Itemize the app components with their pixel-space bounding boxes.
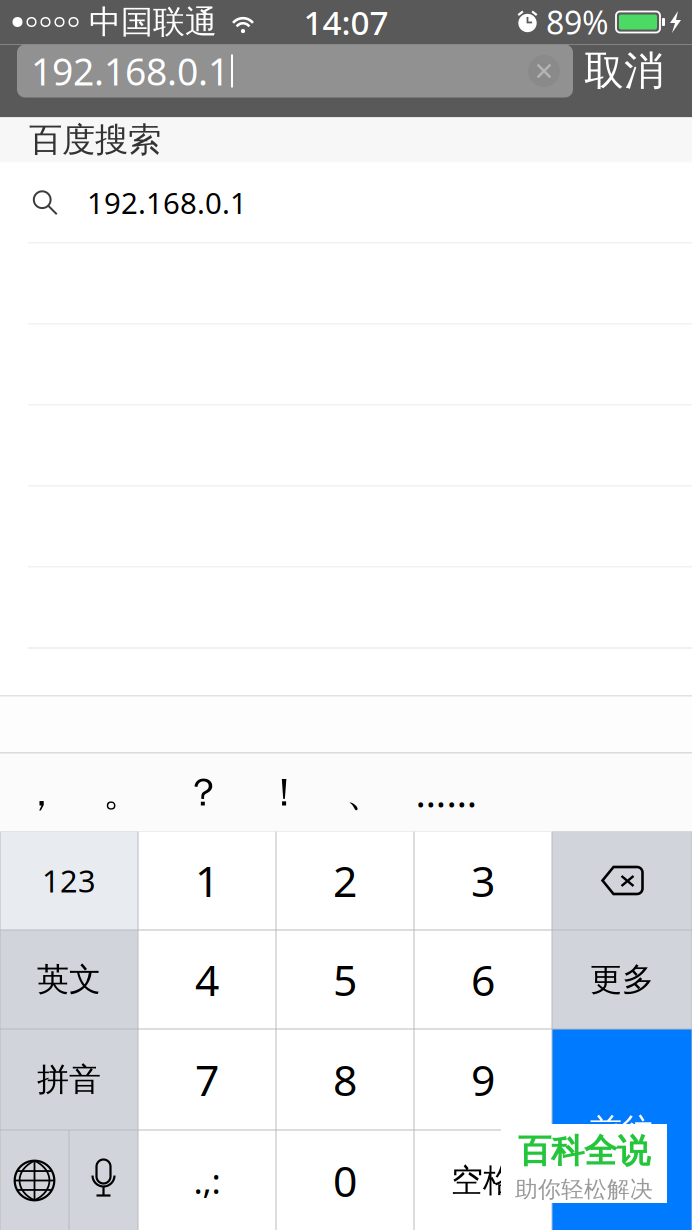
button[interactable]: .,: [138, 1130, 275, 1230]
staticText: 3 [471, 852, 495, 909]
button[interactable]: 更多 [552, 930, 691, 1028]
button[interactable]: Delete [552, 831, 691, 929]
staticText: 2 [333, 852, 357, 909]
button[interactable]: ！ [244, 753, 325, 831]
staticText: ， [22, 769, 61, 816]
button[interactable]: 7 [138, 1029, 275, 1129]
staticText: 89% [546, 1, 609, 43]
button[interactable]: 前往 [552, 1029, 691, 1230]
button[interactable]: 5 [276, 930, 413, 1028]
button[interactable]: Clear text [528, 55, 560, 87]
staticText: 9 [471, 1051, 495, 1108]
staticText: 拼音 [37, 1060, 101, 1099]
staticText: …… [415, 767, 477, 818]
button[interactable]: 1 [138, 831, 275, 929]
staticText: 5 [333, 951, 357, 1008]
staticText: .,: [193, 1157, 220, 1203]
staticText: 123 [42, 860, 96, 901]
button[interactable]: ？ [163, 753, 244, 831]
staticText: 、 [346, 769, 385, 816]
button[interactable]: …… [406, 753, 487, 831]
button[interactable]: Switch keyboard [0, 1130, 68, 1230]
staticText: ？ [184, 769, 223, 816]
staticText: 8 [333, 1051, 357, 1108]
button[interactable]: 4 [138, 930, 275, 1028]
button[interactable]: ， [1, 753, 82, 831]
staticText: 。 [103, 769, 142, 816]
button[interactable]: 英文 [0, 930, 137, 1028]
button[interactable]: 8 [276, 1029, 413, 1129]
button[interactable]: 192.168.0.1 [0, 162, 692, 242]
staticText: 1 [195, 852, 219, 909]
button[interactable]: 6 [414, 930, 551, 1028]
button[interactable]: 。 [82, 753, 163, 831]
button[interactable]: 3 [414, 831, 551, 929]
button[interactable]: 0 [276, 1130, 413, 1230]
staticText: 前往 [590, 1110, 654, 1150]
staticText: 更多 [590, 960, 654, 999]
staticText: 192.168.0.1 [87, 183, 247, 222]
button[interactable]: Dictate [69, 1130, 137, 1230]
button[interactable]: 拼音 [0, 1029, 137, 1129]
button[interactable]: 9 [414, 1029, 551, 1129]
staticText: 空格 [451, 1161, 515, 1200]
staticText: 14:07 [303, 0, 388, 44]
button[interactable]: 123 [0, 831, 137, 929]
staticText: 4 [195, 951, 219, 1008]
staticText: 百科全说 [518, 1131, 650, 1171]
staticText: 助你轻松解决 [515, 1176, 653, 1203]
button[interactable]: 2 [276, 831, 413, 929]
staticText: 7 [195, 1051, 219, 1108]
staticText: 6 [471, 951, 495, 1008]
staticText: 192.168.0.1 [31, 46, 229, 96]
staticText: ！ [265, 769, 304, 816]
staticText: 取消 [584, 46, 664, 95]
button[interactable]: 取消 [584, 44, 664, 97]
staticText: 英文 [37, 960, 101, 999]
button[interactable]: 、 [325, 753, 406, 831]
staticText: 0 [333, 1152, 357, 1209]
staticText: 百度搜索 [29, 119, 161, 160]
button[interactable]: 空格 [414, 1130, 551, 1230]
staticText: 中国联通 [89, 2, 217, 42]
